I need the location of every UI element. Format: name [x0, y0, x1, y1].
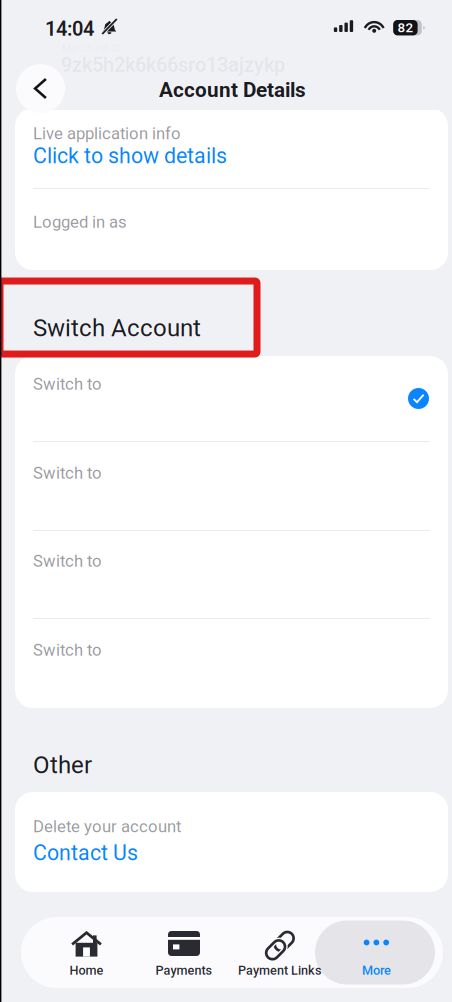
button[interactable]: Home: [26, 917, 146, 988]
staticText: Contact Us: [33, 840, 138, 865]
staticText: Account Details: [159, 78, 306, 102]
staticText: 14:04: [45, 17, 94, 41]
staticText: Other: [33, 751, 92, 779]
staticText: Home: [69, 963, 103, 978]
staticText: 9zk5h2k6k66sro13ajzykp: [61, 53, 285, 77]
staticText: Switch to: [33, 463, 102, 483]
staticText: Switch to: [33, 640, 102, 660]
staticText: Logged in as: [33, 212, 127, 232]
button[interactable]: Payments: [124, 917, 244, 988]
button[interactable]: Back: [16, 64, 65, 113]
button[interactable]: Switch to: [33, 639, 430, 707]
button[interactable]: Delete your account: [33, 813, 430, 866]
staticText: More: [362, 963, 391, 978]
button[interactable]: Payment Links: [220, 917, 340, 988]
staticText: Live application info: [33, 124, 181, 143]
staticText: Delete your account: [33, 817, 181, 836]
staticText: 82: [397, 20, 413, 35]
button[interactable]: Switch to: [33, 462, 430, 530]
staticText: Click to show details: [33, 143, 227, 168]
button[interactable]: Switch to: [33, 373, 430, 441]
staticText: Switch to: [33, 374, 102, 394]
button[interactable]: More: [316, 917, 436, 988]
staticText: Payment Links: [238, 963, 322, 978]
button[interactable]: Switch to: [33, 550, 430, 618]
staticText: Switch Account: [33, 314, 201, 342]
staticText: Payments: [155, 963, 212, 978]
button[interactable]: Live application info: [33, 122, 430, 171]
staticText: Switch to: [33, 551, 102, 571]
